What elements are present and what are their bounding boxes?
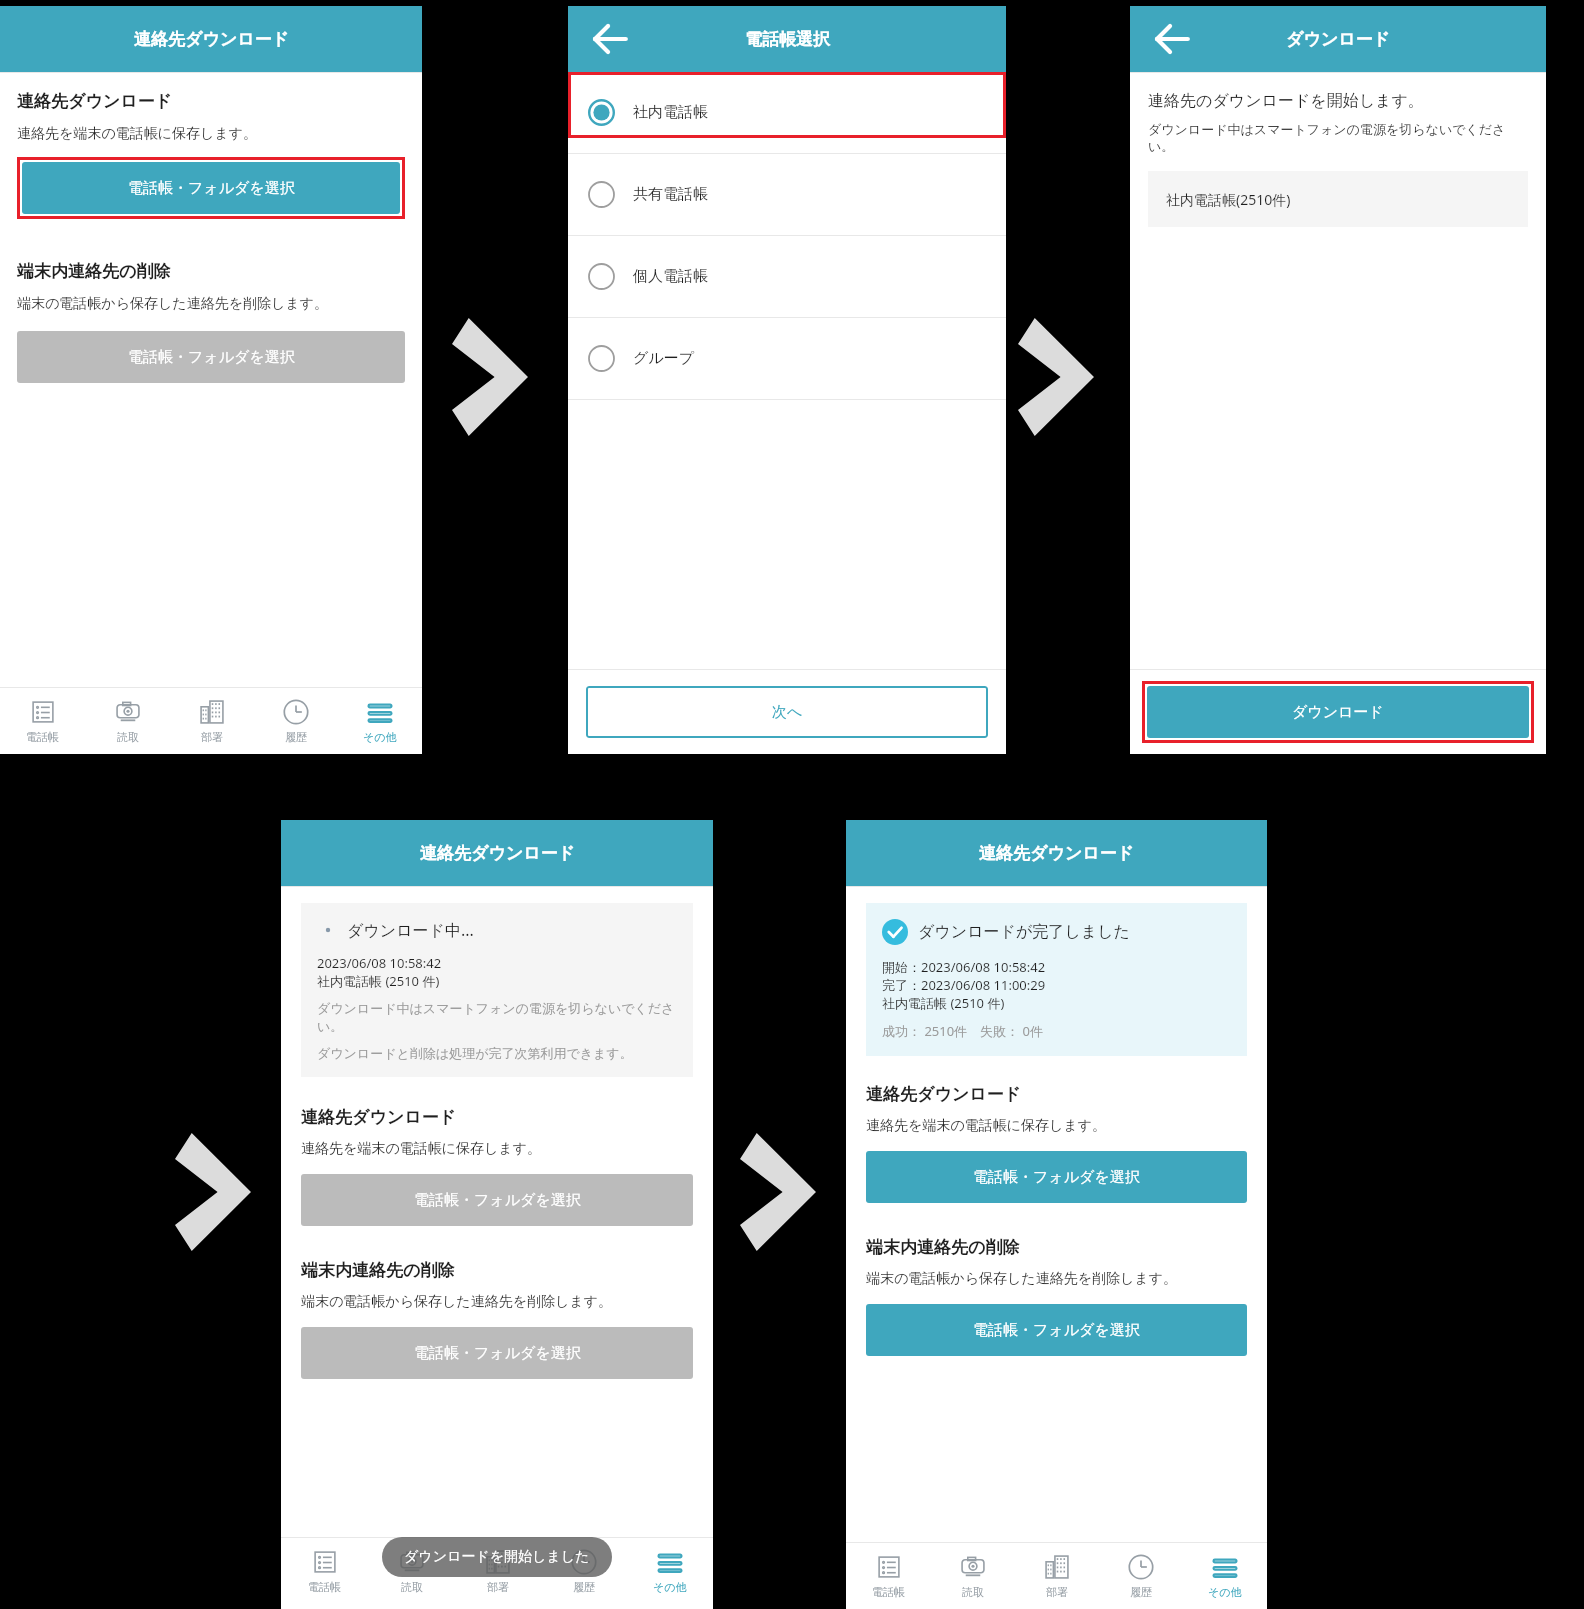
staticText: 部署 (487, 1580, 509, 1594)
staticText: 電話帳・フォルダを選択 (973, 1321, 1140, 1340)
staticText: 読取 (401, 1580, 423, 1594)
button[interactable]: 電話帳・フォルダを選択 (866, 1151, 1247, 1203)
staticText: 電話帳・フォルダを選択 (414, 1344, 581, 1363)
button[interactable]: その他 (338, 688, 422, 754)
staticText: 連絡先ダウンロード (17, 91, 172, 112)
button[interactable]: 社内電話帳 (568, 72, 1006, 153)
button[interactable]: 電話帳 (0, 688, 85, 754)
staticText: ダウンロード (1286, 29, 1390, 50)
button[interactable]: その他 (1183, 1543, 1267, 1609)
button[interactable]: グループ (568, 318, 1006, 399)
staticText: 連絡先ダウンロード (420, 843, 575, 864)
button[interactable]: 部署 (455, 1538, 541, 1604)
staticText: 端末の電話帳から保存した連絡先を削除します。 (866, 1270, 1177, 1288)
staticText: 読取 (962, 1585, 984, 1599)
staticText: 電話帳・フォルダを選択 (973, 1168, 1140, 1187)
button[interactable]: 電話帳・フォルダを選択 (301, 1174, 693, 1226)
button[interactable]: 次へ (586, 686, 988, 738)
button[interactable]: 電話帳・フォルダを選択 (301, 1327, 693, 1379)
button[interactable]: 電話帳・フォルダを選択 (22, 162, 400, 214)
button[interactable]: Back (1150, 17, 1194, 61)
button[interactable]: Back (588, 17, 632, 61)
staticText: ダウンロードと削除は処理が完了次第利用できます。 (317, 1045, 633, 1061)
button[interactable]: その他 (627, 1538, 713, 1604)
staticText: ダウンロード中はスマートフォンの電源を切らないでください。 (1148, 121, 1528, 155)
button[interactable]: 電話帳・フォルダを選択 (866, 1304, 1247, 1356)
staticText: 端末内連絡先の削除 (17, 261, 171, 282)
button[interactable]: 履歴 (541, 1538, 627, 1604)
staticText: 連絡先を端末の電話帳に保存します。 (866, 1117, 1106, 1135)
staticText: 開始：2023/06/08 10:58:42 (882, 958, 1046, 976)
staticText: 履歴 (285, 730, 307, 744)
button[interactable]: 電話帳・フォルダを選択 (17, 331, 405, 383)
button[interactable]: 読取 (85, 688, 170, 754)
staticText: その他 (653, 1580, 687, 1594)
button[interactable]: 部署 (170, 688, 254, 754)
staticText: 連絡先ダウンロード (301, 1107, 456, 1128)
staticText: 端末内連絡先の削除 (866, 1237, 1020, 1258)
staticText: 共有電話帳 (633, 185, 708, 204)
button[interactable]: ダウンロード (1147, 686, 1529, 738)
staticText: ダウンロード (1292, 703, 1384, 722)
staticText: その他 (1208, 1585, 1242, 1599)
staticText: 電話帳・フォルダを選択 (414, 1191, 581, 1210)
staticText: 社内電話帳 (2510 件) (882, 994, 1005, 1012)
button[interactable]: 部署 (1015, 1543, 1099, 1609)
staticText: グループ (633, 349, 695, 368)
staticText: 端末の電話帳から保存した連絡先を削除します。 (17, 295, 328, 313)
staticText: 電話帳 (308, 1580, 341, 1594)
staticText: ダウンロード中... (347, 919, 474, 941)
staticText: 電話帳・フォルダを選択 (128, 348, 295, 367)
staticText: 2023/06/08 10:58:42 (317, 954, 442, 972)
staticText: 電話帳 (26, 730, 59, 744)
button[interactable]: 読取 (931, 1543, 1015, 1609)
staticText: 電話帳選択 (745, 29, 830, 50)
staticText: 部署 (1046, 1585, 1068, 1599)
staticText: 端末内連絡先の削除 (301, 1260, 455, 1281)
staticText: 連絡先ダウンロード (979, 843, 1134, 864)
staticText: 連絡先ダウンロード (134, 29, 289, 50)
button[interactable]: 履歴 (254, 688, 338, 754)
staticText: 電話帳 (872, 1585, 905, 1599)
staticText: 個人電話帳 (633, 267, 708, 286)
staticText: 完了：2023/06/08 11:00:29 (882, 976, 1046, 994)
button[interactable]: 電話帳 (281, 1538, 368, 1604)
staticText: ダウンロードが完了しました (918, 922, 1130, 942)
staticText: 成功： 2510件 失敗： 0件 (882, 1022, 1043, 1040)
staticText: 連絡先ダウンロード (866, 1084, 1021, 1105)
staticText: 次へ (772, 703, 803, 722)
staticText: 社内電話帳(2510件) (1166, 190, 1291, 209)
staticText: 読取 (117, 730, 139, 744)
staticText: 社内電話帳 (2510 件) (317, 972, 440, 990)
staticText: 履歴 (573, 1580, 595, 1594)
staticText: 連絡先を端末の電話帳に保存します。 (17, 125, 257, 143)
staticText: ダウンロード中はスマートフォンの電源を切らないでください。 (317, 1000, 677, 1035)
staticText: 端末の電話帳から保存した連絡先を削除します。 (301, 1293, 612, 1311)
button[interactable]: 履歴 (1099, 1543, 1183, 1609)
button[interactable]: 読取 (368, 1538, 455, 1604)
button[interactable]: 共有電話帳 (568, 154, 1006, 235)
button[interactable]: 電話帳 (846, 1543, 931, 1609)
staticText: 電話帳・フォルダを選択 (128, 179, 295, 198)
staticText: 社内電話帳 (633, 103, 708, 122)
staticText: 履歴 (1130, 1585, 1152, 1599)
staticText: ダウンロードを開始しました (404, 1548, 590, 1566)
button[interactable]: 個人電話帳 (568, 236, 1006, 317)
staticText: その他 (363, 730, 397, 744)
staticText: 部署 (201, 730, 223, 744)
staticText: 連絡先のダウンロードを開始します。 (1148, 91, 1424, 111)
staticText: 連絡先を端末の電話帳に保存します。 (301, 1140, 541, 1158)
